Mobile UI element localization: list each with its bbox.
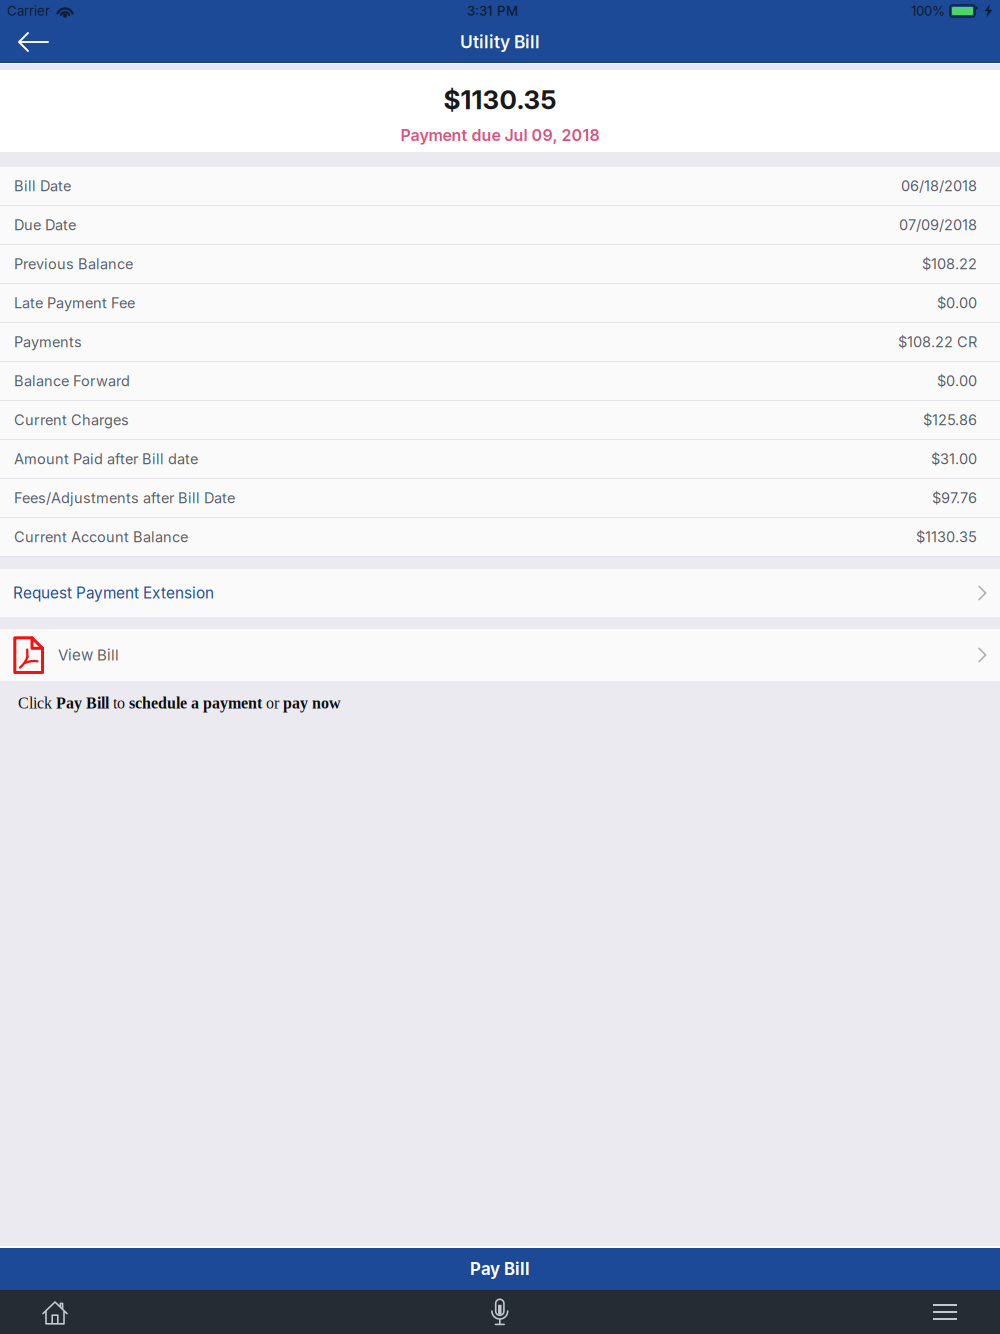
staticText: Carrier [7, 3, 50, 19]
button[interactable]: Pay Bill [0, 1248, 1000, 1290]
staticText: or [262, 694, 283, 712]
staticText: Due Date [14, 216, 76, 234]
staticText: Pay Bill [470, 1259, 530, 1279]
button[interactable]: Menu [890, 1290, 1000, 1334]
staticText: Late Payment Fee [14, 294, 135, 312]
staticText: to [109, 694, 129, 712]
staticText: schedule a payment [129, 694, 262, 712]
staticText: Click [18, 694, 56, 712]
staticText: Fees/Adjustments after Bill Date [14, 489, 235, 507]
staticText: $0.00 [937, 294, 977, 312]
staticText: Payments [14, 333, 82, 351]
staticText: $31.00 [931, 450, 977, 468]
staticText: $125.86 [923, 411, 977, 429]
staticText: 100% [911, 3, 945, 19]
staticText: $1130.35 [443, 84, 556, 116]
staticText: $108.22 CR [898, 333, 977, 351]
staticText: Payment due Jul 09, 2018 [400, 125, 599, 145]
staticText: Pay Bill [56, 694, 109, 712]
staticText: View Bill [58, 646, 119, 664]
staticText: Previous Balance [14, 255, 133, 273]
staticText: Utility Bill [460, 31, 540, 52]
staticText: $0.00 [937, 372, 977, 390]
staticText: Request Payment Extension [13, 584, 214, 602]
staticText: 07/09/2018 [899, 216, 977, 234]
staticText: Current Account Balance [14, 528, 188, 546]
button[interactable]: Home [0, 1290, 110, 1334]
staticText: Balance Forward [14, 372, 130, 390]
button[interactable]: Voice assistant [445, 1290, 555, 1334]
button[interactable]: Back [0, 22, 67, 62]
staticText: Current Charges [14, 411, 129, 429]
staticText: Bill Date [14, 177, 71, 195]
staticText: 3:31 PM [467, 3, 518, 19]
staticText: $1130.35 [916, 528, 977, 546]
staticText: Amount Paid after Bill date [14, 450, 198, 468]
button[interactable]: Request Payment Extension [0, 569, 1000, 617]
staticText: $97.76 [932, 489, 977, 507]
staticText: $108.22 [922, 255, 977, 273]
staticText: 06/18/2018 [901, 177, 977, 195]
staticText: pay now [283, 694, 341, 712]
button[interactable]: View Bill [0, 629, 1000, 681]
